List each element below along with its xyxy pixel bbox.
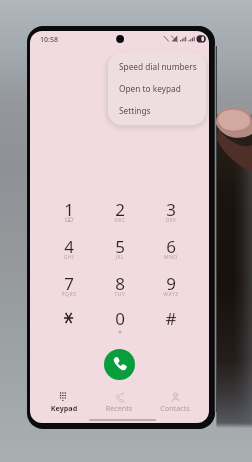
staticText: TUV [95, 291, 145, 298]
staticText: 0 [95, 307, 145, 330]
staticText: WXYZ [146, 291, 196, 298]
staticText: DEF [146, 217, 196, 224]
button[interactable]: 1 [44, 195, 94, 227]
staticText: Settings [119, 105, 151, 116]
button[interactable]: Settings [108, 99, 206, 121]
button[interactable]: 5 [95, 232, 145, 264]
staticText: 2 [95, 198, 145, 221]
staticText: 8 [95, 272, 145, 295]
button[interactable]: # [146, 304, 196, 336]
button[interactable]: Call [104, 349, 135, 380]
staticText: MNO [146, 254, 196, 261]
button[interactable]: Keypad [34, 387, 94, 415]
button[interactable]: 6 [146, 232, 196, 264]
button[interactable]: 0 [95, 304, 145, 336]
button[interactable]: Recents [89, 387, 149, 415]
button[interactable]: 7 [44, 269, 94, 301]
staticText: 3 [146, 198, 196, 221]
staticText: Recents [89, 403, 149, 413]
button[interactable]: Contacts [145, 387, 205, 415]
button[interactable]: 9 [146, 269, 196, 301]
button[interactable]: 8 [95, 269, 145, 301]
staticText: 5 [95, 235, 145, 258]
staticText: Keypad [34, 403, 94, 413]
staticText: 1 [44, 198, 94, 221]
staticText: Speed dial numbers [119, 61, 197, 72]
staticText: 9 [146, 272, 196, 295]
staticText: JKL [95, 254, 145, 261]
button[interactable]: Open to keypad [108, 77, 206, 99]
staticText: 10:58 [40, 35, 58, 45]
button[interactable]: Speed dial numbers [108, 55, 206, 77]
button[interactable] [44, 304, 94, 336]
staticText: 6 [146, 235, 196, 258]
staticText: GHI [44, 254, 94, 261]
staticText: # [146, 307, 196, 330]
button[interactable]: 2 [95, 195, 145, 227]
staticText: PQRS [44, 291, 94, 298]
button[interactable]: 3 [146, 195, 196, 227]
staticText: Open to keypad [119, 83, 181, 94]
staticText: 7 [44, 272, 94, 295]
staticText: Contacts [145, 403, 205, 413]
button[interactable]: 4 [44, 232, 94, 264]
staticText: 4 [44, 235, 94, 258]
staticText: ABC [95, 217, 145, 224]
